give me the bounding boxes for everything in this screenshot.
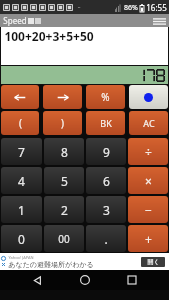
staticText: 00 bbox=[58, 232, 70, 246]
button[interactable]: % bbox=[86, 85, 125, 109]
staticText: 9 bbox=[103, 144, 110, 160]
button[interactable]: 00 bbox=[44, 225, 84, 252]
staticText: AC bbox=[143, 117, 155, 129]
button[interactable]: − bbox=[128, 196, 168, 223]
staticText: ) bbox=[61, 116, 64, 130]
staticText: + bbox=[145, 231, 152, 247]
button[interactable]: ) bbox=[43, 111, 82, 135]
staticText: 3 bbox=[103, 202, 110, 218]
button[interactable]: Equals bbox=[129, 85, 168, 109]
staticText: 100+20+3+5+50 bbox=[4, 28, 94, 44]
button[interactable]: 0 bbox=[1, 225, 42, 252]
staticText: 86% bbox=[124, 3, 138, 13]
staticText: 6 bbox=[103, 173, 110, 189]
button[interactable]: 開く bbox=[141, 257, 165, 267]
button[interactable]: Speed bbox=[0, 14, 169, 27]
button[interactable]: 7 bbox=[1, 138, 42, 165]
staticText: 16:55 bbox=[146, 2, 167, 13]
button[interactable]: AC bbox=[129, 111, 168, 135]
button[interactable]: + bbox=[128, 225, 168, 252]
button[interactable]: 3 bbox=[86, 196, 126, 223]
staticText: ( bbox=[19, 116, 22, 130]
staticText: 1 bbox=[18, 202, 25, 218]
button[interactable]: 9 bbox=[86, 138, 126, 165]
button[interactable]: 6 bbox=[86, 167, 126, 194]
staticText: 2 bbox=[61, 202, 68, 218]
staticText: 5 bbox=[61, 173, 68, 189]
button[interactable]: Menu bbox=[153, 16, 166, 26]
button[interactable]: Yahoo! JAPAN bbox=[0, 253, 169, 270]
button[interactable]: . bbox=[86, 225, 126, 252]
staticText: Speed bbox=[3, 15, 27, 26]
button[interactable]: Back bbox=[27, 270, 47, 290]
button[interactable]: ÷ bbox=[128, 138, 168, 165]
staticText: 7 bbox=[18, 144, 25, 160]
staticText: 開く bbox=[147, 258, 160, 266]
staticText: ·· bbox=[77, 3, 81, 11]
button[interactable]: 1 bbox=[1, 196, 42, 223]
staticText: Yahoo! JAPAN bbox=[8, 255, 34, 260]
staticText: あなたの避難場所がわかる bbox=[8, 260, 94, 269]
button[interactable]: 8 bbox=[44, 138, 84, 165]
button[interactable]: × bbox=[128, 167, 168, 194]
button[interactable]: 5 bbox=[44, 167, 84, 194]
button[interactable]: Recents bbox=[122, 270, 142, 290]
button[interactable]: BK bbox=[86, 111, 125, 135]
staticText: × bbox=[145, 173, 152, 189]
staticText: 4 bbox=[18, 173, 25, 189]
button[interactable]: Move cursor right bbox=[43, 85, 82, 109]
button[interactable]: ( bbox=[1, 111, 39, 135]
button[interactable]: 4 bbox=[1, 167, 42, 194]
staticText: 0 bbox=[18, 231, 25, 247]
button[interactable]: 2 bbox=[44, 196, 84, 223]
staticText: BK bbox=[100, 117, 112, 129]
staticText: 8 bbox=[61, 144, 68, 160]
button[interactable]: Home bbox=[75, 270, 95, 290]
staticText: − bbox=[145, 202, 152, 218]
staticText: . bbox=[104, 231, 108, 247]
button[interactable]: Move cursor left bbox=[1, 85, 39, 109]
staticText: % bbox=[101, 90, 110, 104]
staticText: ÷ bbox=[145, 144, 152, 160]
